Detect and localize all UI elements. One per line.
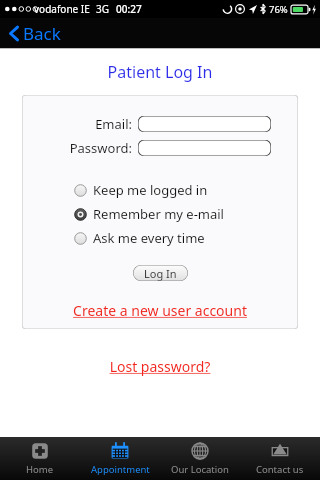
staticText: Contact us	[256, 463, 304, 476]
staticText: Home	[26, 463, 54, 476]
button[interactable]: Our Location	[160, 437, 240, 480]
button[interactable]: Create a new user account	[22, 301, 298, 320]
button[interactable]: Lost password?	[0, 357, 320, 376]
button[interactable]: Keep me logged in	[74, 181, 298, 199]
staticText: Back	[23, 22, 61, 44]
button[interactable]	[138, 116, 271, 132]
button[interactable]: Log In	[133, 265, 188, 281]
staticText: 3G	[96, 2, 109, 16]
staticText: Log In	[144, 266, 177, 281]
staticText: Our Location	[171, 463, 229, 476]
staticText: Ask me every time	[93, 229, 205, 247]
button[interactable]: Back	[5, 18, 65, 48]
button[interactable]: Ask me every time	[74, 229, 298, 247]
button[interactable]: Home	[0, 437, 80, 480]
staticText: Patient Log In	[0, 61, 320, 83]
button[interactable]: Contact us	[240, 437, 320, 480]
staticText: vodafone IE	[34, 2, 90, 16]
staticText: Email:	[22, 115, 132, 133]
button[interactable]: Remember my e-mail	[74, 205, 298, 223]
staticText: Password:	[22, 139, 132, 157]
staticText: Keep me logged in	[93, 181, 208, 199]
staticText: Appointment	[91, 463, 150, 476]
button[interactable]: Appointment	[80, 437, 160, 480]
staticText: 00:27	[116, 2, 142, 16]
button[interactable]	[138, 140, 271, 156]
staticText: Remember my e-mail	[93, 205, 224, 223]
staticText: 76%	[269, 3, 288, 16]
